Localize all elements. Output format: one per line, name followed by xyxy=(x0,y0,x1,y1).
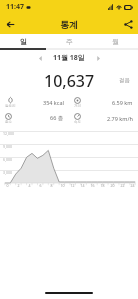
staticText: 속도 xyxy=(74,120,81,124)
staticText: 6 xyxy=(39,183,42,188)
staticText: 16 xyxy=(90,183,95,188)
button[interactable]: 월 xyxy=(92,34,138,48)
button[interactable]: 층수 xyxy=(0,111,69,125)
staticText: 14 xyxy=(80,183,85,188)
staticText: 칼로리 xyxy=(5,104,16,108)
staticText: 12 xyxy=(70,183,75,188)
staticText: 6,000 xyxy=(3,157,12,162)
staticText: 통계 xyxy=(60,19,78,30)
button[interactable]: Next day xyxy=(91,51,105,65)
staticText: 10 xyxy=(60,183,65,188)
button[interactable]: 주 xyxy=(46,34,92,48)
staticText: 354 kcal xyxy=(43,99,64,106)
staticText: 일 xyxy=(20,37,27,46)
staticText: 층수 xyxy=(5,120,12,124)
staticText: 2 xyxy=(17,183,20,188)
staticText: 12,000 xyxy=(3,131,14,136)
button[interactable]: 속도 xyxy=(69,111,138,125)
staticText: 4 xyxy=(28,183,31,188)
button[interactable]: Share xyxy=(118,14,138,34)
staticText: 6.59 km xyxy=(112,99,133,106)
staticText: 월 xyxy=(112,37,119,46)
staticText: 11:47 xyxy=(6,2,24,12)
staticText: 22 xyxy=(120,183,125,188)
staticText: 0 xyxy=(6,183,9,188)
button[interactable]: 거리 xyxy=(69,95,138,109)
staticText: 3,000 xyxy=(3,170,12,175)
button[interactable]: Previous day xyxy=(33,51,47,65)
staticText: 20 xyxy=(110,183,115,188)
staticText: 거리 xyxy=(74,104,81,108)
button[interactable]: 일 xyxy=(0,34,46,48)
staticText: 걸음 xyxy=(119,77,130,84)
staticText: 66 층 xyxy=(50,114,64,122)
staticText: 18 xyxy=(100,183,105,188)
staticText: 10,637 xyxy=(44,70,95,90)
button[interactable]: Back xyxy=(0,14,20,34)
staticText: 주 xyxy=(66,37,73,46)
staticText: 8 xyxy=(50,183,53,188)
staticText: 11월 18일 xyxy=(53,53,85,63)
staticText: 2.79 km/h xyxy=(107,115,133,122)
staticText: 24 xyxy=(130,183,135,188)
button[interactable]: 칼로리 xyxy=(0,95,69,109)
staticText: 9,000 xyxy=(3,144,12,149)
